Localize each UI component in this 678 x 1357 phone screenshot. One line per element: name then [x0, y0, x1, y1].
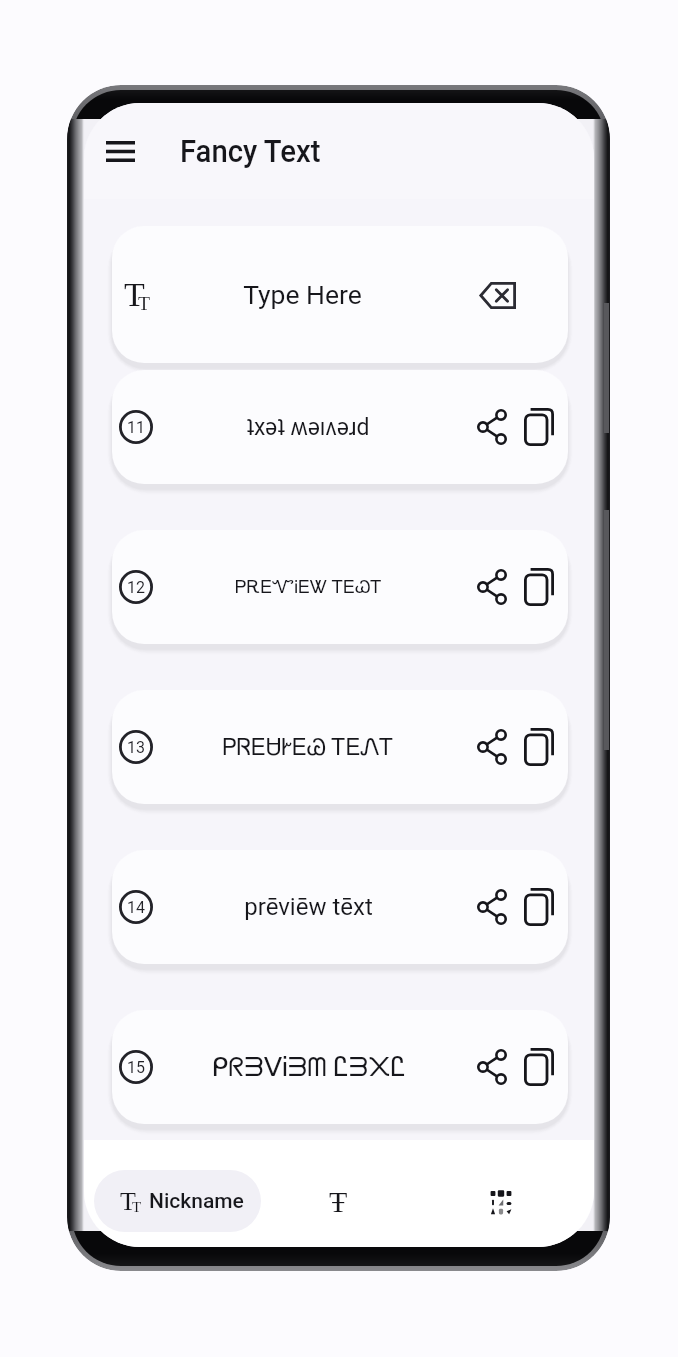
staticText: ᑭᖇᗱᐯᎥᗱᗰ Ꮭᗱ᙭Ꮭ [211, 1051, 406, 1083]
staticText: T [120, 1187, 136, 1216]
button[interactable]: T [94, 1170, 261, 1232]
button[interactable]: Copy [515, 883, 563, 931]
button[interactable]: Share [468, 883, 516, 931]
staticText: Fancy Text [180, 132, 321, 170]
button[interactable]: Emoji [461, 1162, 541, 1242]
staticText: 15 [127, 1058, 145, 1077]
staticText: T [132, 1199, 142, 1216]
button[interactable]: Font style [115, 269, 167, 321]
staticText: prēviēw tēxt [244, 893, 373, 921]
button[interactable]: Copy [515, 403, 563, 451]
button[interactable]: 11 [112, 370, 568, 484]
button[interactable]: Menu [90, 121, 150, 181]
button[interactable]: Font style [112, 226, 568, 363]
staticText: 13 [127, 738, 145, 757]
button[interactable]: 12 [112, 530, 568, 644]
staticText: Ŧ [329, 1185, 348, 1218]
button[interactable]: Copy [515, 723, 563, 771]
staticText: Nickname [149, 1189, 244, 1214]
button[interactable]: Share [468, 723, 516, 771]
button[interactable]: Share [468, 403, 516, 451]
button[interactable]: Copy [515, 563, 563, 611]
button[interactable]: 14 [112, 850, 568, 964]
button[interactable]: Font styles [298, 1161, 378, 1241]
button[interactable]: Copy [515, 1043, 563, 1091]
button[interactable]: Share [468, 1043, 516, 1091]
staticText: T [138, 292, 151, 314]
staticText: 14 [127, 898, 145, 917]
button[interactable]: Clear text [471, 269, 523, 321]
staticText: Type Here [243, 279, 362, 310]
staticText: ᏢᎡᎬᏉᎥᎬᏔ ᎢᎬᏇᎢ [235, 576, 382, 598]
staticText: ʇxǝʇ ʍǝıʌǝɹd [246, 414, 370, 441]
button[interactable]: 15 [112, 1010, 568, 1124]
staticText: ᏢᏒᎬᏌᎨᎬᏊ ᎢᎬᏁᎢ [222, 734, 394, 761]
button[interactable]: 13 [112, 690, 568, 804]
staticText: 12 [127, 578, 145, 597]
button[interactable]: Share [468, 563, 516, 611]
staticText: T [124, 276, 145, 314]
staticText: 11 [127, 418, 145, 437]
